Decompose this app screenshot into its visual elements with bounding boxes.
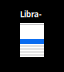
staticText: Library <box>20 9 42 30</box>
